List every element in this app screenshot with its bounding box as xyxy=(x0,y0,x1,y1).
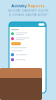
staticText: Activity xyxy=(11,3,26,8)
staticText: Generate data-driven reports xyxy=(8,9,48,12)
staticText: Reports xyxy=(28,3,45,8)
staticText: to enhance parental control xyxy=(8,13,47,16)
button[interactable] xyxy=(11,42,21,45)
